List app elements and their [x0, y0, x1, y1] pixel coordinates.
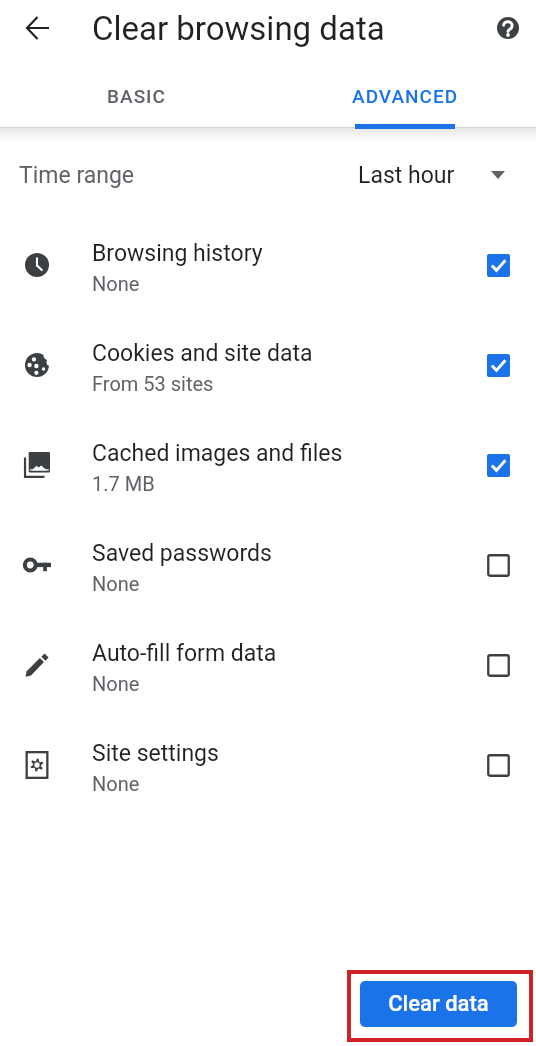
button[interactable]: Clear data [360, 981, 517, 1027]
staticText: Site settings [92, 740, 219, 767]
staticText: Time range [19, 162, 135, 189]
staticText: Clear data [388, 991, 489, 1017]
button[interactable]: Help [484, 4, 532, 52]
staticText: Auto-fill form data [92, 640, 277, 667]
staticText: None [92, 772, 140, 795]
button[interactable]: Site settings [0, 715, 536, 815]
button[interactable]: Cookies and site data [0, 315, 536, 415]
staticText: Cached images and files [92, 440, 343, 467]
staticText: Clear browsing data [92, 9, 385, 48]
button[interactable]: Cached images and files [0, 415, 536, 515]
button[interactable]: Saved passwords [0, 515, 536, 615]
staticText: BASIC [107, 85, 166, 107]
staticText: ADVANCED [352, 85, 459, 107]
button[interactable]: Browsing history [0, 215, 536, 315]
staticText: Last hour [358, 162, 455, 189]
button[interactable]: Auto-fill form data [0, 615, 536, 715]
staticText: Cookies and site data [92, 340, 313, 367]
staticText: From 53 sites [92, 372, 214, 395]
button[interactable]: Back [13, 4, 61, 52]
button[interactable]: Time range [0, 146, 536, 206]
staticText: None [92, 272, 140, 295]
staticText: 1.7 MB [92, 472, 155, 495]
staticText: None [92, 572, 140, 595]
button[interactable]: BASIC [2, 0, 270, 128]
button[interactable]: ADVANCED [271, 0, 536, 128]
staticText: None [92, 672, 140, 695]
staticText: Saved passwords [92, 540, 272, 567]
staticText: Browsing history [92, 240, 263, 267]
